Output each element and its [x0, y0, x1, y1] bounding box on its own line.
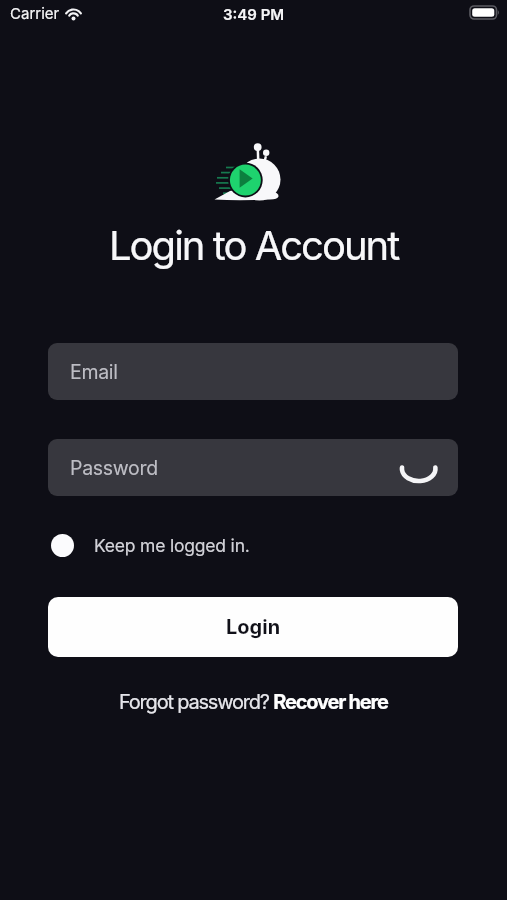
button[interactable]: Password	[48, 439, 458, 496]
staticText: 3:49 PM	[223, 5, 285, 23]
button[interactable]: Login	[48, 597, 458, 657]
staticText: Keep me logged in.	[94, 535, 250, 556]
button[interactable]: Forgot password? Recover here	[119, 690, 388, 714]
staticText: Login to Account	[109, 221, 399, 269]
staticText: Password	[70, 456, 158, 480]
staticText: Login	[226, 615, 281, 639]
staticText: Carrier	[10, 4, 60, 22]
staticText: Email	[70, 360, 118, 384]
button[interactable]: Keep me logged in.	[51, 534, 250, 557]
button[interactable]: Email	[48, 343, 458, 400]
